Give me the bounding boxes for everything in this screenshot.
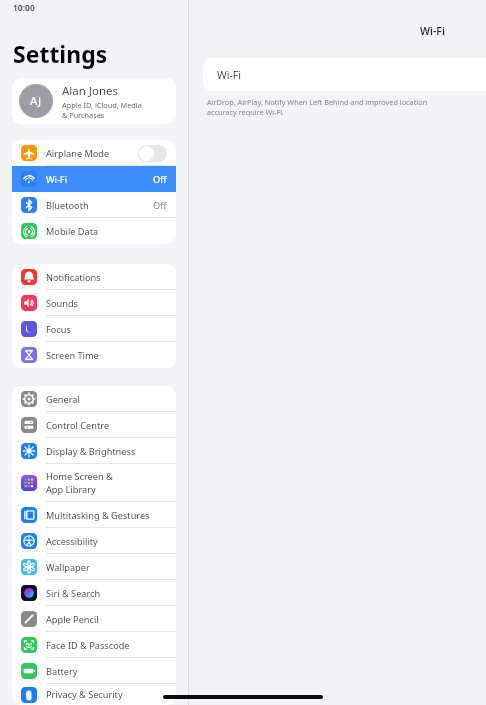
button[interactable]: Airplane Mode [12, 140, 176, 166]
button[interactable]: Display & Brightness [12, 438, 176, 464]
button[interactable]: Focus [12, 316, 176, 342]
button[interactable]: Apple Pencil [12, 606, 176, 632]
button[interactable]: Battery [12, 658, 176, 684]
staticText: Bluetooth [46, 199, 89, 212]
button[interactable]: Face ID & Passcode [12, 632, 176, 658]
staticText: Screen Time [46, 349, 99, 362]
staticText: Wi-Fi [46, 173, 68, 186]
staticText: Mobile Data [46, 225, 99, 238]
button[interactable]: Notifications [12, 264, 176, 290]
staticText: Privacy & Security [46, 688, 123, 701]
staticText: App Library [46, 483, 96, 496]
button[interactable]: Siri & Search [12, 580, 176, 606]
staticText: Wi-Fi [420, 24, 445, 38]
button[interactable]: Airplane Mode toggle [138, 145, 167, 162]
button[interactable]: Control Centre [12, 412, 176, 438]
button[interactable]: Accessibility [12, 528, 176, 554]
staticText: Home Screen & [46, 470, 113, 483]
staticText: Multitasking & Gestures [46, 509, 150, 522]
staticText: Face ID & Passcode [46, 639, 130, 652]
staticText: Off [153, 173, 167, 186]
staticText: General [46, 393, 80, 406]
staticText: Off [153, 199, 167, 212]
staticText: Siri & Search [46, 587, 101, 600]
button[interactable]: Privacy & Security [12, 684, 176, 705]
staticText: Wallpaper [46, 561, 90, 574]
staticText: Battery [46, 665, 78, 678]
staticText: Notifications [46, 271, 101, 284]
button[interactable]: General [12, 386, 176, 412]
staticText: Alan Jones [62, 83, 119, 99]
staticText: Control Centre [46, 419, 110, 432]
button[interactable]: Multitasking & Gestures [12, 502, 176, 528]
staticText: 10:00 [13, 2, 35, 14]
button[interactable]: Home Screen & [12, 464, 176, 502]
button[interactable]: Sounds [12, 290, 176, 316]
staticText: Display & Brightness [46, 445, 136, 458]
staticText: Airplane Mode [46, 147, 110, 160]
staticText: & Purchases [62, 110, 105, 120]
staticText: Sounds [46, 297, 79, 310]
staticText: Focus [46, 323, 71, 336]
button[interactable]: AJ [12, 78, 176, 124]
staticText: Apple ID, iCloud, Media [62, 100, 142, 110]
button[interactable]: Bluetooth [12, 192, 176, 218]
staticText: AJ [30, 93, 42, 109]
button[interactable]: Mobile Data [12, 218, 176, 244]
button[interactable]: Wi-Fi [12, 166, 176, 192]
staticText: accuracy require Wi-Fi. [207, 107, 285, 117]
staticText: Wi-Fi [217, 68, 242, 82]
staticText: AirDrop, AirPlay, Notify When Left Behin… [207, 97, 428, 107]
button[interactable]: Wallpaper [12, 554, 176, 580]
button[interactable]: Wi-Fi [203, 58, 486, 91]
button[interactable]: Screen Time [12, 342, 176, 368]
staticText: Accessibility [46, 535, 98, 548]
staticText: Apple Pencil [46, 613, 99, 626]
staticText: Settings [13, 38, 108, 69]
